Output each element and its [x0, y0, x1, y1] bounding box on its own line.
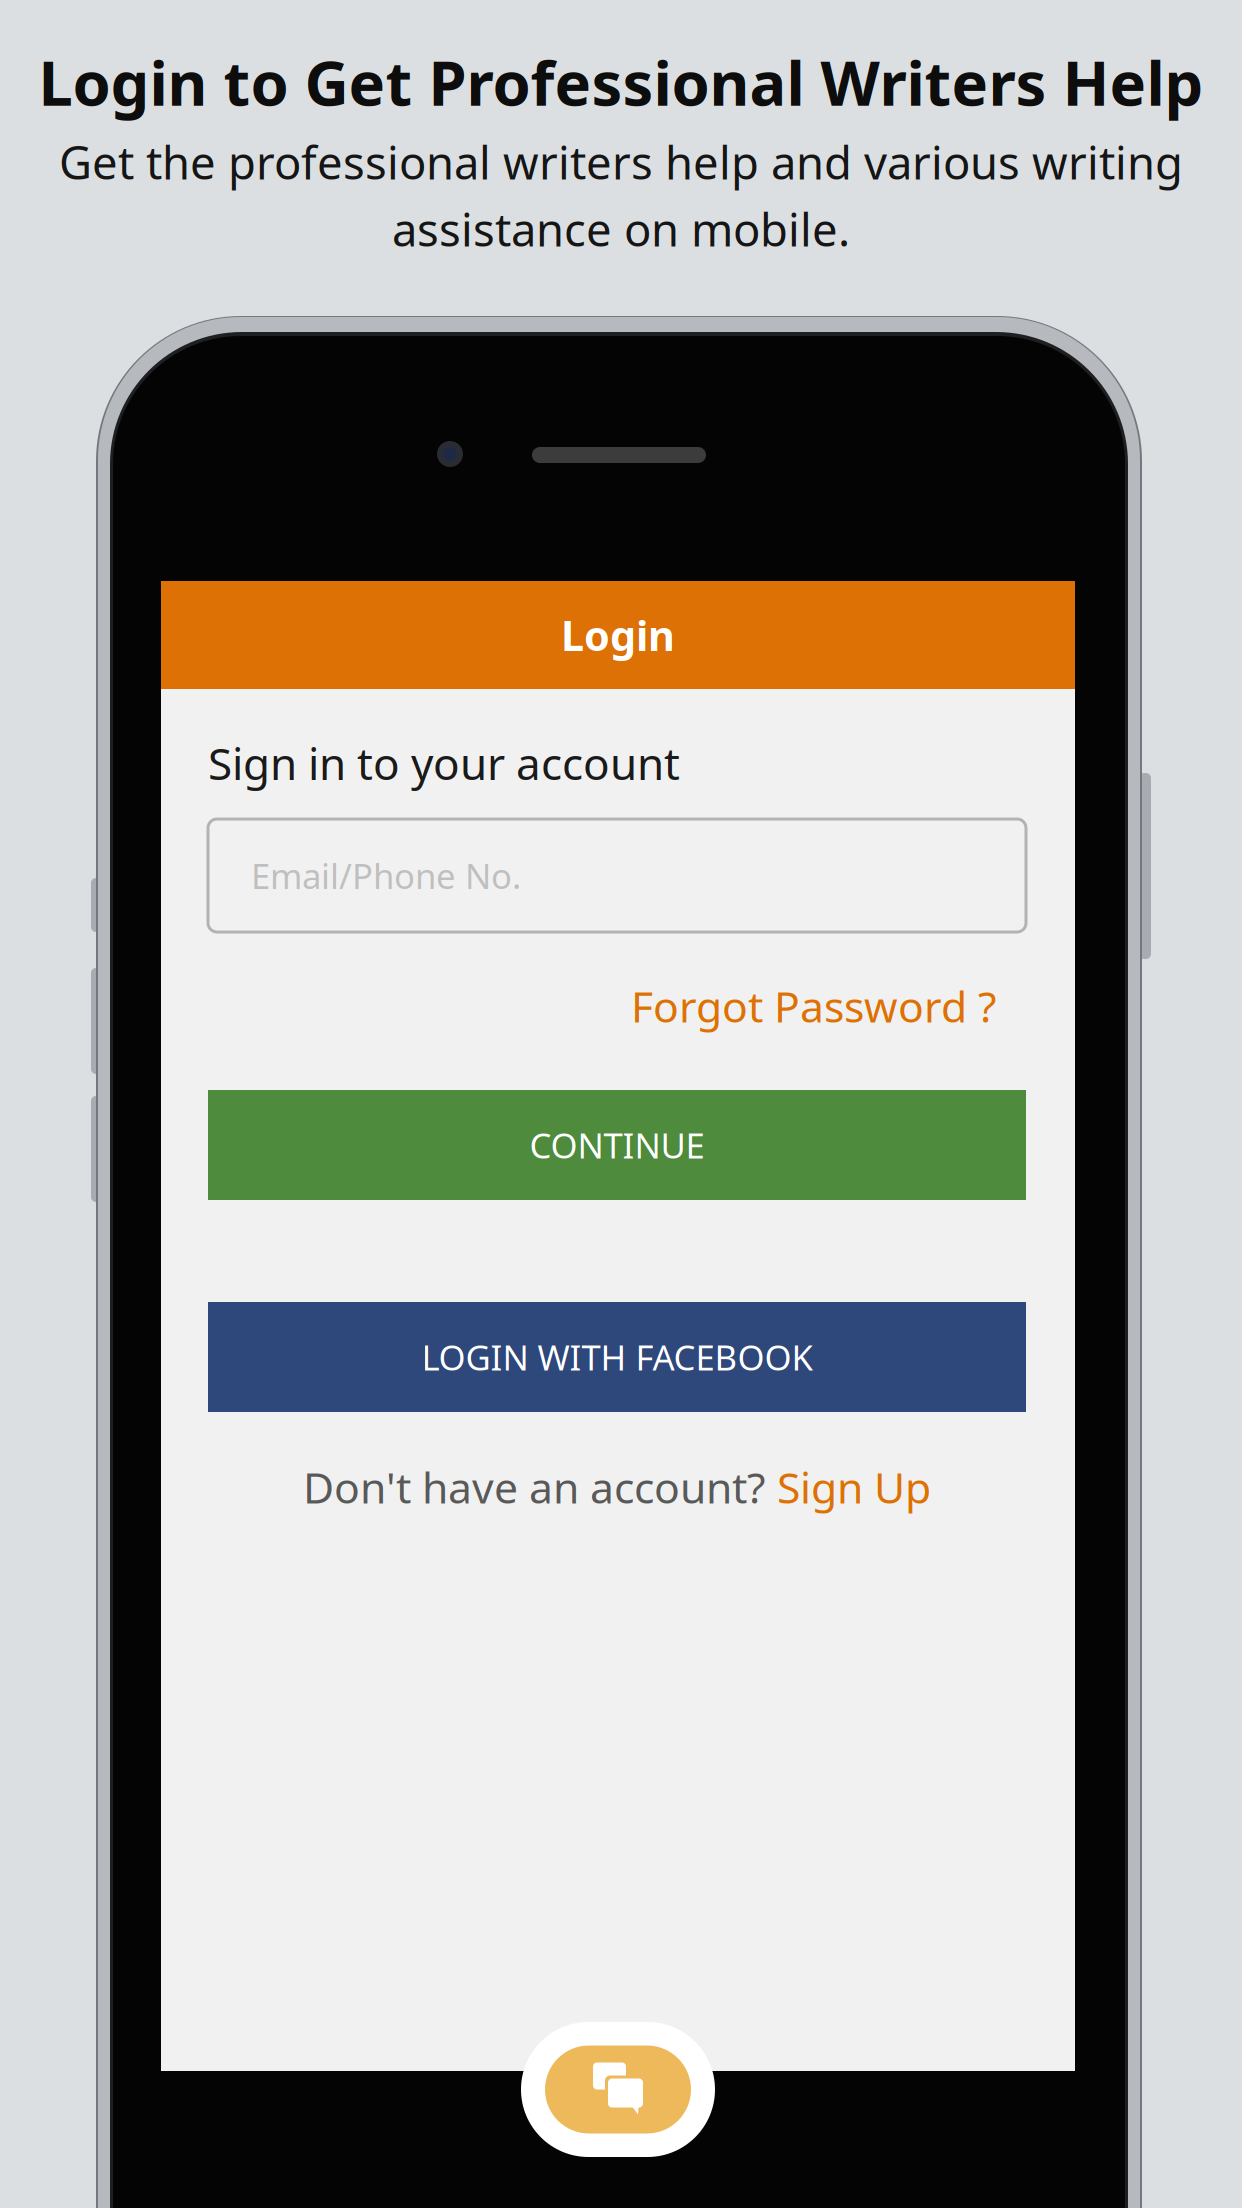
staticText: Sign Up [777, 1459, 931, 1515]
button[interactable]: Chat support [521, 2022, 715, 2157]
staticText: Login [561, 608, 675, 662]
button[interactable]: Email/Phone No. [208, 819, 1026, 932]
button[interactable]: Forgot Password ? [208, 968, 997, 1044]
staticText: assistance on mobile. [392, 199, 850, 259]
staticText: LOGIN WITH FACEBOOK [421, 1334, 812, 1380]
staticText: Email/Phone No. [251, 852, 521, 898]
staticText: Login to Get Professional Writers Help [38, 41, 1203, 123]
staticText: Forgot Password ? [631, 978, 997, 1034]
staticText: Sign in to your account [208, 734, 680, 792]
staticText: Get the professional writers help and va… [59, 132, 1183, 192]
button[interactable]: Don't have an account? [208, 1456, 1026, 1518]
button[interactable]: CONTINUE [208, 1090, 1026, 1200]
button[interactable]: LOGIN WITH FACEBOOK [208, 1302, 1026, 1412]
staticText: CONTINUE [529, 1122, 704, 1168]
staticText: Don't have an account? [303, 1459, 777, 1515]
